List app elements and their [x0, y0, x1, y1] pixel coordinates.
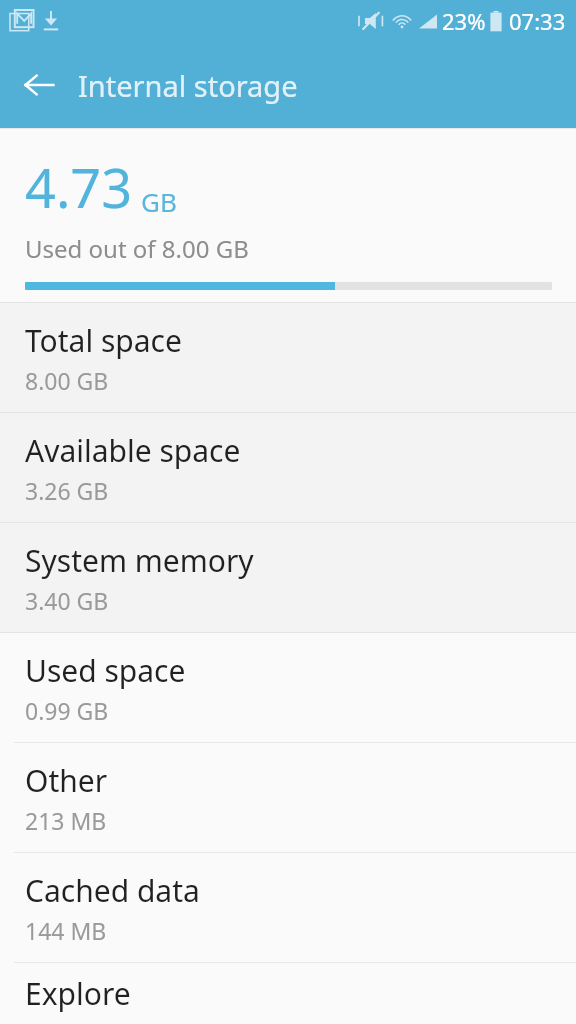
staticText: Available space: [25, 430, 241, 471]
staticText: Used space: [25, 650, 186, 691]
button[interactable]: Cached data: [0, 853, 576, 962]
staticText: Explore: [25, 973, 131, 1014]
staticText: 213 MB: [25, 805, 107, 836]
staticText: Cached data: [25, 870, 200, 911]
staticText: 0.99 GB: [25, 695, 109, 726]
staticText: 23%: [442, 6, 486, 36]
button[interactable]: Explore: [0, 963, 576, 1024]
button[interactable]: Used space: [0, 633, 576, 742]
button[interactable]: Available space: [0, 413, 576, 522]
staticText: 3.40 GB: [25, 585, 109, 616]
staticText: 07:33: [509, 6, 566, 36]
button[interactable]: Other: [0, 743, 576, 852]
staticText: GB: [141, 184, 177, 219]
button[interactable]: System memory: [0, 523, 576, 632]
staticText: Total space: [25, 320, 182, 361]
staticText: 144 MB: [25, 915, 107, 946]
staticText: 3.26 GB: [25, 475, 109, 506]
staticText: Internal storage: [78, 66, 298, 105]
button[interactable]: Total space: [0, 303, 576, 412]
button[interactable]: Navigate up: [0, 42, 78, 128]
staticText: Other: [25, 760, 108, 801]
staticText: System memory: [25, 540, 254, 581]
staticText: Used out of 8.00 GB: [25, 232, 249, 265]
staticText: 4.73: [25, 150, 133, 224]
staticText: 8.00 GB: [25, 365, 109, 396]
